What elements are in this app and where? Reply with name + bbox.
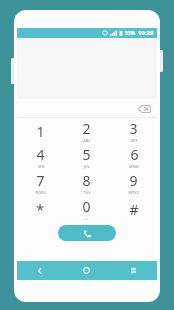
button[interactable]: Recents: [110, 261, 157, 280]
button[interactable]: 4: [17, 144, 63, 170]
button[interactable]: Backspace: [137, 104, 151, 113]
staticText: PQRS: [35, 190, 46, 195]
staticText: MNO: [129, 164, 139, 169]
button[interactable]: *: [17, 196, 63, 222]
staticText: 53%: [125, 30, 136, 37]
staticText: TUV: [83, 190, 91, 195]
button[interactable]: #: [110, 196, 157, 222]
staticText: +: [85, 216, 88, 221]
staticText: 9: [129, 171, 138, 190]
staticText: 8: [82, 171, 91, 190]
button[interactable]: 7: [17, 170, 63, 196]
staticText: ABC: [83, 138, 91, 143]
button[interactable]: 0: [63, 196, 110, 222]
staticText: 0: [82, 197, 91, 216]
staticText: 6: [130, 145, 139, 164]
button[interactable]: 3: [110, 118, 157, 144]
button[interactable]: Back: [17, 261, 63, 280]
staticText: *: [36, 200, 44, 219]
button[interactable]: 8: [63, 170, 110, 196]
button[interactable]: Call: [58, 225, 116, 241]
button[interactable]: 2: [63, 118, 110, 144]
button[interactable]: 6: [110, 144, 157, 170]
staticText: GHI: [37, 164, 45, 169]
staticText: 2: [82, 119, 91, 138]
staticText: 1: [36, 122, 45, 141]
staticText: 7: [36, 171, 45, 190]
staticText: 4: [36, 145, 45, 164]
staticText: WXYZ: [128, 190, 139, 195]
staticText: 10:29: [138, 29, 154, 37]
staticText: DEF: [130, 138, 138, 143]
staticText: 5: [82, 145, 91, 164]
button[interactable]: Home: [63, 261, 110, 280]
button[interactable]: 1: [17, 118, 63, 144]
staticText: #: [129, 200, 139, 219]
button[interactable]: 5: [63, 144, 110, 170]
staticText: JKL: [84, 164, 90, 169]
staticText: 3: [129, 119, 138, 138]
button[interactable]: 9: [110, 170, 157, 196]
